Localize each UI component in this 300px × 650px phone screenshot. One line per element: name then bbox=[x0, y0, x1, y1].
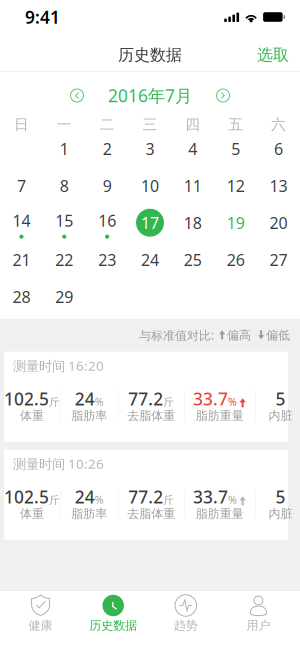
button[interactable]: 11 bbox=[171, 170, 214, 207]
staticText: 2016年7月 bbox=[108, 84, 192, 107]
button[interactable]: 健康 bbox=[4, 590, 77, 650]
button[interactable]: 21 bbox=[0, 244, 43, 281]
button[interactable]: 15 bbox=[43, 207, 86, 244]
staticText: 29 bbox=[55, 286, 73, 307]
staticText: 选取 bbox=[257, 45, 289, 65]
staticText: 8 bbox=[60, 175, 69, 196]
button[interactable]: 14 bbox=[0, 207, 43, 244]
button[interactable]: 5 bbox=[214, 133, 257, 170]
staticText: 四 bbox=[185, 115, 200, 133]
button[interactable]: 27 bbox=[257, 244, 300, 281]
button[interactable]: 16 bbox=[86, 207, 129, 244]
button[interactable]: Next month bbox=[211, 83, 235, 107]
staticText: 15 bbox=[55, 210, 73, 231]
button[interactable]: 9 bbox=[86, 170, 129, 207]
button[interactable]: 20 bbox=[257, 207, 300, 244]
staticText: 21 bbox=[12, 249, 30, 270]
button[interactable]: 17 bbox=[129, 207, 171, 244]
staticText: 26 bbox=[227, 249, 245, 270]
staticText: 偏低 bbox=[266, 328, 290, 342]
button[interactable]: 25 bbox=[171, 244, 214, 281]
staticText: 5 bbox=[231, 138, 240, 159]
button[interactable]: 22 bbox=[43, 244, 86, 281]
staticText: 日 bbox=[14, 115, 29, 133]
button[interactable]: 23 bbox=[86, 244, 129, 281]
staticText: % bbox=[95, 394, 104, 409]
staticText: 19 bbox=[227, 212, 245, 233]
button[interactable]: 6 bbox=[257, 133, 300, 170]
staticText: 23 bbox=[98, 249, 116, 270]
staticText: 偏高 bbox=[227, 328, 251, 342]
staticText: 28 bbox=[12, 286, 30, 307]
staticText: 12 bbox=[227, 175, 245, 196]
button[interactable]: 10 bbox=[129, 170, 171, 207]
staticText: 斤 bbox=[49, 494, 60, 507]
staticText: 10 bbox=[141, 175, 159, 196]
staticText: 77.2 bbox=[128, 387, 163, 410]
staticText: 趋势 bbox=[174, 618, 198, 633]
button[interactable]: 12 bbox=[214, 170, 257, 207]
staticText: 4 bbox=[188, 138, 197, 159]
staticText: 历史数据 bbox=[89, 618, 137, 633]
button[interactable]: 8 bbox=[43, 170, 86, 207]
staticText: 斤 bbox=[163, 494, 174, 507]
staticText: 13 bbox=[270, 175, 288, 196]
staticText: 斤 bbox=[163, 396, 174, 409]
button[interactable]: 13 bbox=[257, 170, 300, 207]
staticText: 测量时间 16:20 bbox=[13, 357, 104, 374]
button[interactable]: Previous month bbox=[65, 83, 89, 107]
staticText: % bbox=[95, 492, 104, 507]
staticText: 3 bbox=[145, 138, 154, 159]
staticText: 25 bbox=[184, 249, 202, 270]
staticText: 9:41 bbox=[25, 5, 60, 28]
staticText: 27 bbox=[270, 249, 288, 270]
staticText: 脂肪重量 bbox=[196, 506, 244, 521]
button[interactable]: 19 bbox=[214, 207, 257, 244]
staticText: 六 bbox=[271, 115, 286, 133]
staticText: 一 bbox=[57, 115, 72, 133]
staticText: 脂肪率 bbox=[71, 506, 107, 521]
staticText: 9 bbox=[103, 175, 112, 196]
button[interactable]: 29 bbox=[43, 281, 86, 318]
staticText: 内脏 bbox=[268, 408, 292, 423]
button[interactable]: 24 bbox=[129, 244, 171, 281]
button[interactable]: 选取 bbox=[243, 34, 300, 72]
button[interactable]: 2 bbox=[86, 133, 129, 170]
staticText: 1 bbox=[60, 138, 69, 159]
staticText: 历史数据 bbox=[118, 45, 182, 65]
staticText: 健康 bbox=[29, 618, 53, 633]
button[interactable]: 18 bbox=[171, 207, 214, 244]
staticText: 20 bbox=[270, 212, 288, 233]
button[interactable]: 历史数据 bbox=[77, 590, 149, 650]
button[interactable]: 28 bbox=[0, 281, 43, 318]
staticText: 33.7 bbox=[193, 387, 228, 410]
button[interactable]: 4 bbox=[171, 133, 214, 170]
button[interactable]: 趋势 bbox=[149, 590, 222, 650]
staticText: 24 bbox=[75, 387, 95, 410]
staticText: 用户 bbox=[246, 618, 270, 633]
staticText: 14 bbox=[12, 210, 30, 231]
staticText: 33.7 bbox=[193, 485, 228, 508]
staticText: 斤 bbox=[49, 396, 60, 409]
staticText: 测量时间 10:26 bbox=[13, 455, 104, 472]
staticText: 16 bbox=[98, 210, 116, 231]
staticText: 去脂体重 bbox=[127, 506, 175, 521]
staticText: 102.5 bbox=[4, 387, 49, 410]
staticText: 二 bbox=[100, 115, 115, 133]
staticText: 24 bbox=[141, 249, 159, 270]
staticText: 体重 bbox=[20, 506, 44, 521]
button[interactable]: 用户 bbox=[222, 590, 295, 650]
staticText: 22 bbox=[55, 249, 73, 270]
staticText: 五 bbox=[228, 115, 243, 133]
button[interactable]: 1 bbox=[43, 133, 86, 170]
staticText: 5 bbox=[275, 387, 285, 410]
staticText: 5 bbox=[275, 485, 285, 508]
staticText: 去脂体重 bbox=[127, 408, 175, 423]
staticText: 2 bbox=[103, 138, 112, 159]
staticText: 11 bbox=[184, 175, 202, 196]
staticText: 102.5 bbox=[4, 485, 49, 508]
staticText: 脂肪率 bbox=[71, 408, 107, 423]
button[interactable]: 7 bbox=[0, 170, 43, 207]
button[interactable]: 3 bbox=[129, 133, 171, 170]
button[interactable]: 26 bbox=[214, 244, 257, 281]
